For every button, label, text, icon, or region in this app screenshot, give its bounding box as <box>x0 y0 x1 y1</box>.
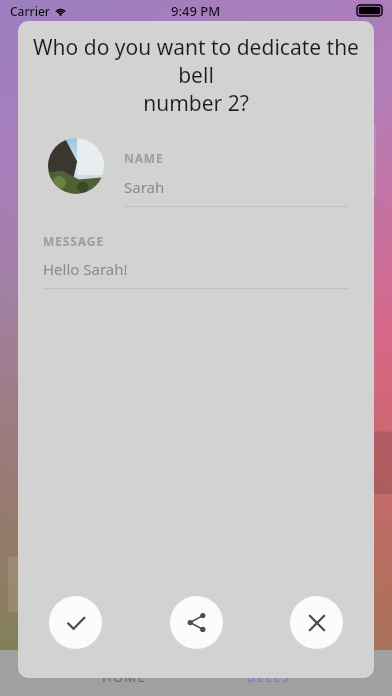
staticText: Carrier <box>10 3 50 19</box>
staticText: Who do you want to dedicate the bell num… <box>28 33 364 117</box>
button[interactable]: Share <box>170 596 223 649</box>
staticText: 9:49 PM <box>171 2 221 20</box>
staticText: MESSAGE <box>43 233 105 249</box>
staticText: NAME <box>124 150 164 166</box>
button[interactable]: Close <box>290 596 343 649</box>
staticText: BELLS <box>247 668 290 686</box>
staticText: Hello Sarah! <box>43 259 128 279</box>
staticText: Sarah <box>124 177 165 197</box>
button[interactable]: Confirm <box>49 596 102 649</box>
staticText: HOME <box>102 668 146 686</box>
